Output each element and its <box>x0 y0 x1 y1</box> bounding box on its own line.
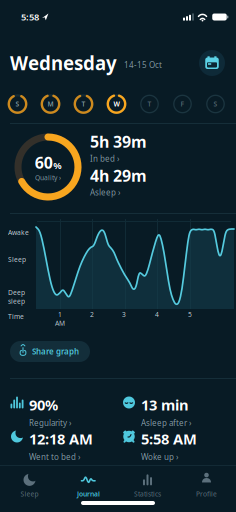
staticText: Awake <box>8 228 29 237</box>
staticText: T <box>147 100 151 108</box>
staticText: S <box>15 100 19 108</box>
button[interactable]: Share graph <box>10 341 90 362</box>
button[interactable]: 13 min <box>122 395 228 428</box>
button[interactable]: Journal <box>59 466 118 506</box>
staticText: Quality › <box>35 173 61 182</box>
staticText: Profile <box>196 489 217 498</box>
staticText: Woke up › <box>141 451 178 462</box>
button[interactable]: 5:58 AM <box>122 429 228 462</box>
button[interactable]: Calendar <box>199 50 225 76</box>
staticText: 13 min <box>141 395 189 414</box>
staticText: 5 <box>188 310 192 319</box>
staticText: Statistics <box>134 489 161 498</box>
staticText: Sleep <box>20 489 38 498</box>
staticText: 90% <box>29 395 58 414</box>
staticText: 5:58 AM <box>141 429 197 448</box>
button[interactable]: W <box>106 94 126 114</box>
staticText: M <box>47 100 53 108</box>
staticText: Time <box>8 312 24 321</box>
staticText: 2 <box>90 310 94 319</box>
button[interactable]: S <box>205 94 225 114</box>
staticText: S <box>213 100 217 108</box>
staticText: Asleep after › <box>141 417 191 428</box>
button[interactable]: 90% <box>10 395 116 428</box>
staticText: Went to bed › <box>29 451 80 462</box>
staticText: Regularity › <box>29 417 71 428</box>
staticText: % <box>53 159 61 172</box>
staticText: W <box>113 100 119 108</box>
staticText: 1 <box>58 310 62 319</box>
button[interactable]: 4h 29m <box>90 165 147 198</box>
button[interactable]: M <box>40 94 60 114</box>
staticText: 4 <box>155 310 159 319</box>
staticText: 3 <box>122 310 126 319</box>
staticText: 5h 39m <box>90 131 147 152</box>
button[interactable]: 60 <box>14 133 82 201</box>
button[interactable]: S <box>7 94 27 114</box>
staticText: 12:18 AM <box>29 429 93 448</box>
staticText: Deep sleep <box>8 288 25 306</box>
button[interactable]: F <box>172 94 192 114</box>
staticText: 5:58 <box>21 11 39 23</box>
staticText: F <box>180 100 184 108</box>
button[interactable]: Sleep <box>0 466 59 506</box>
staticText: In bed › <box>90 153 119 164</box>
staticText: Sleep <box>8 255 26 264</box>
staticText: T <box>81 100 85 108</box>
button[interactable]: Statistics <box>118 466 177 506</box>
button[interactable]: Profile <box>177 466 236 506</box>
staticText: 14-15 Oct <box>124 60 162 70</box>
button[interactable]: T <box>139 94 159 114</box>
staticText: Wednesday <box>10 51 117 75</box>
button[interactable]: 12:18 AM <box>10 429 116 462</box>
staticText: 4h 29m <box>90 165 147 186</box>
button[interactable]: 5h 39m <box>90 131 147 164</box>
staticText: 60 <box>35 152 53 173</box>
staticText: AM <box>55 319 65 328</box>
staticText: Asleep › <box>90 187 120 198</box>
staticText: Journal <box>77 489 100 498</box>
button[interactable]: T <box>73 94 93 114</box>
staticText: Share graph <box>32 346 79 357</box>
